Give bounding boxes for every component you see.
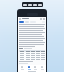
button[interactable]: [19, 56, 45, 58]
button[interactable]: [22, 2, 43, 7]
button[interactable]: [19, 52, 45, 54]
button[interactable]: [19, 50, 45, 52]
button[interactable]: [19, 21, 24, 23]
button[interactable]: Library: [26, 65, 32, 70]
button[interactable]: Menu: [19, 18, 21, 20]
button[interactable]: [19, 58, 45, 60]
button[interactable]: Profile: [39, 65, 45, 70]
button[interactable]: [25, 21, 29, 23]
button[interactable]: Home: [19, 65, 25, 70]
button[interactable]: [19, 54, 45, 56]
button[interactable]: Saved: [32, 65, 38, 70]
